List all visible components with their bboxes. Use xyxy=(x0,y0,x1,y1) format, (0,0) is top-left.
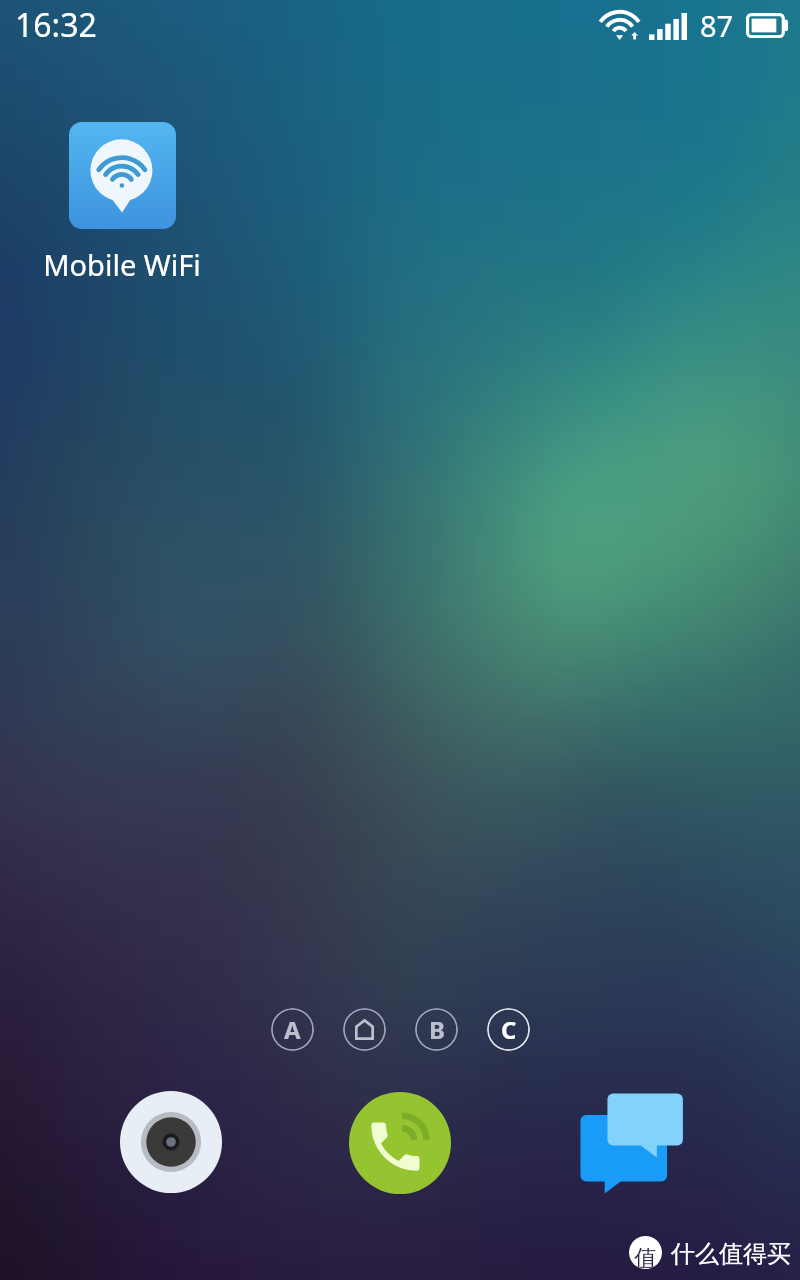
button[interactable]: C xyxy=(487,1008,530,1051)
staticText: A xyxy=(284,1013,301,1046)
staticText: 16:32 xyxy=(15,3,97,47)
button[interactable]: B xyxy=(415,1008,458,1051)
button[interactable]: Messaging xyxy=(567,1080,693,1206)
staticText: 值 xyxy=(634,1244,657,1269)
button[interactable]: Camera xyxy=(108,1079,234,1205)
button[interactable]: Phone xyxy=(337,1080,463,1206)
button[interactable]: Mobile WiFi xyxy=(36,122,208,284)
staticText: C xyxy=(501,1013,517,1046)
staticText: Mobile WiFi xyxy=(43,245,201,284)
button[interactable]: Home xyxy=(343,1008,386,1051)
staticText: 什么值得买 xyxy=(671,1239,791,1269)
staticText: B xyxy=(429,1013,445,1046)
button[interactable]: A xyxy=(271,1008,314,1051)
staticText: 87 xyxy=(700,6,734,45)
